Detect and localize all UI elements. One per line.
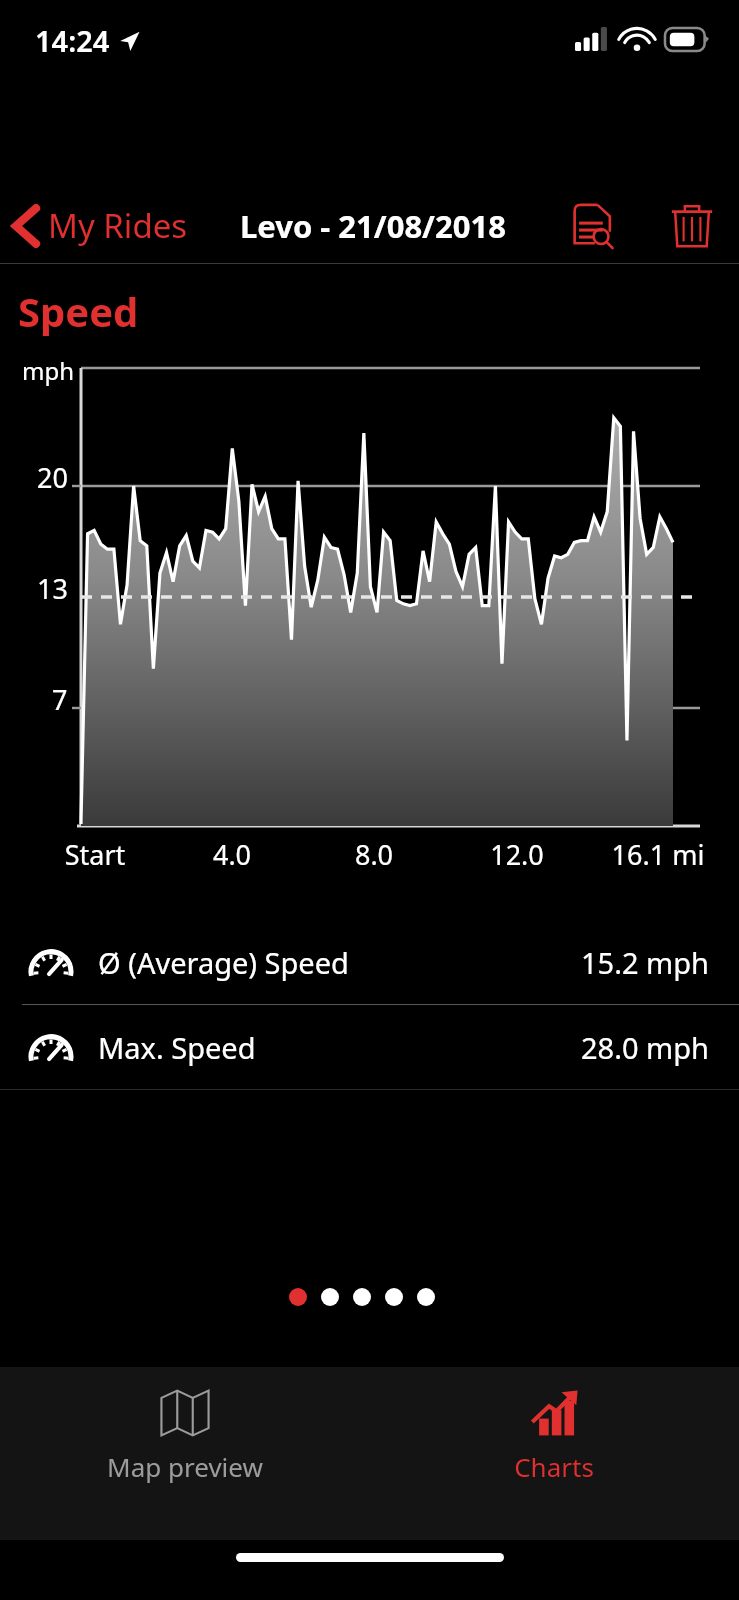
staticText: 16.1 mi bbox=[598, 836, 718, 873]
staticText: 28.0 mph bbox=[581, 1028, 709, 1067]
staticText: Map preview bbox=[75, 1449, 295, 1484]
staticText: 15.2 mph bbox=[581, 943, 709, 982]
staticText: Ø (Average) Speed bbox=[98, 943, 349, 982]
staticText: 13 bbox=[37, 570, 68, 607]
button[interactable]: Map preview bbox=[75, 1367, 295, 1494]
staticText: Levo - 21/08/2018 bbox=[240, 205, 506, 247]
staticText: 14:24 bbox=[35, 21, 110, 60]
staticText: 12.0 bbox=[457, 836, 577, 873]
button[interactable]: Ride details bbox=[563, 195, 625, 257]
staticText: Charts bbox=[444, 1449, 664, 1484]
staticText: Start bbox=[35, 836, 155, 873]
staticText: 8.0 bbox=[314, 836, 434, 873]
button[interactable]: Max. Speed bbox=[0, 1005, 739, 1089]
staticText: My Rides bbox=[48, 203, 188, 248]
button[interactable]: My Rides bbox=[0, 195, 200, 256]
staticText: 20 bbox=[37, 459, 68, 496]
staticText: Max. Speed bbox=[98, 1028, 256, 1067]
staticText: 4.0 bbox=[172, 836, 292, 873]
button[interactable]: Delete ride bbox=[661, 195, 723, 257]
button[interactable]: Ø (Average) Speed bbox=[0, 920, 739, 1004]
staticText: mph bbox=[22, 354, 75, 387]
staticText: 7 bbox=[52, 681, 68, 718]
staticText: Speed bbox=[18, 284, 139, 338]
button[interactable]: Charts bbox=[444, 1367, 664, 1494]
